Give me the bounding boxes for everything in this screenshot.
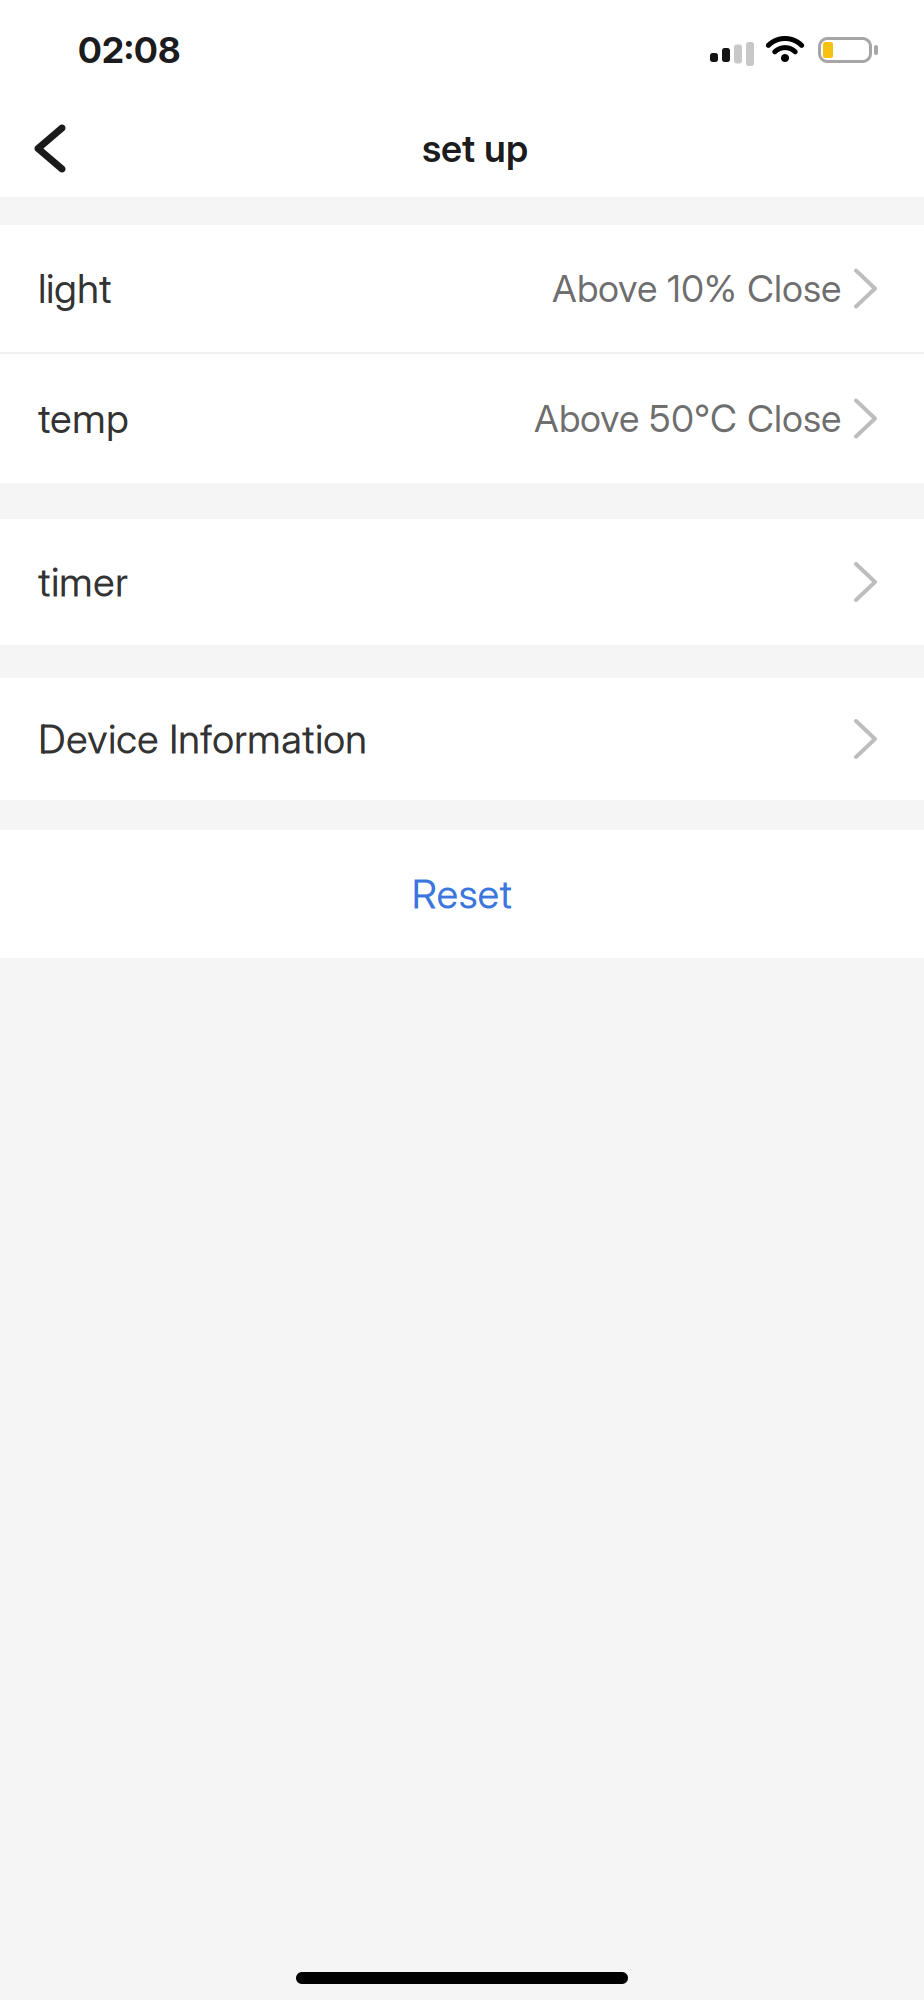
staticText: Above 10% Close — [552, 266, 841, 310]
button[interactable]: timer — [0, 519, 924, 645]
staticText: Device Information — [38, 715, 367, 763]
staticText: Reset — [411, 870, 512, 918]
staticText: 02:08 — [78, 29, 180, 71]
button[interactable]: Device Information — [0, 678, 924, 800]
staticText: timer — [38, 558, 128, 606]
staticText: Above 50℃ Close — [534, 396, 841, 440]
staticText: temp — [38, 395, 129, 442]
button[interactable]: Reset — [0, 830, 924, 958]
button[interactable]: Back — [0, 108, 82, 189]
button[interactable]: light — [0, 225, 924, 352]
button[interactable]: temp — [0, 354, 924, 483]
staticText: light — [38, 265, 112, 312]
staticText: set up — [422, 126, 528, 170]
